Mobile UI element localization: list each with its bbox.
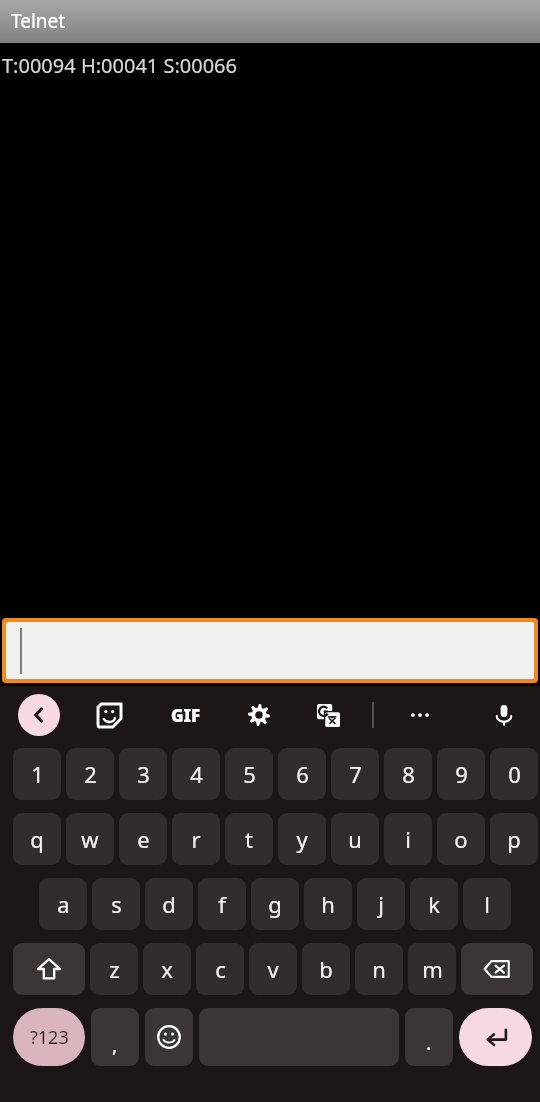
staticText: , [112,1031,118,1058]
button[interactable]: z [90,943,138,995]
staticText: p [507,824,521,854]
button[interactable]: e [119,813,167,865]
button[interactable]: Translate [308,695,348,735]
button[interactable]: Telnet [0,0,540,43]
staticText: g [268,889,282,919]
staticText: c [215,954,226,984]
button[interactable]: 6 [278,748,326,800]
staticText: j [378,889,384,919]
button[interactable]: Shift [13,943,85,995]
staticText: Telnet [11,8,66,34]
button[interactable]: More options [400,695,440,735]
button[interactable]: g [251,878,299,930]
button[interactable]: r [172,813,220,865]
staticText: o [454,824,468,854]
button[interactable]: Backspace [461,943,533,995]
button[interactable]: x [143,943,191,995]
staticText: v [267,954,279,984]
button[interactable]: 4 [172,748,220,800]
button[interactable]: h [304,878,352,930]
button[interactable]: n [355,943,403,995]
button[interactable]: Stickers [89,695,129,735]
staticText: d [162,889,176,919]
button[interactable]: m [408,943,456,995]
button[interactable]: k [410,878,458,930]
button[interactable]: q [13,813,61,865]
button[interactable]: l [463,878,511,930]
staticText: 5 [243,759,256,789]
staticText: w [81,824,99,854]
button[interactable]: d [145,878,193,930]
staticText: e [137,824,150,854]
button[interactable]: 8 [384,748,432,800]
button[interactable]: 3 [119,748,167,800]
staticText: x [161,954,173,984]
button[interactable]: 7 [331,748,379,800]
button[interactable]: 1 [13,748,61,800]
staticText: i [405,824,411,854]
button[interactable]: s [92,878,140,930]
button[interactable]: 2 [66,748,114,800]
button[interactable]: Emoji [145,1008,193,1066]
button[interactable]: t [225,813,273,865]
staticText: T:00094 H:00041 S:00066 [2,52,237,79]
staticText: s [111,889,122,919]
button[interactable]: v [249,943,297,995]
staticText: l [484,889,490,919]
button[interactable]: j [357,878,405,930]
button[interactable] [6,622,534,679]
staticText: 6 [296,759,309,789]
staticText: 1 [31,759,44,789]
staticText: a [57,889,70,919]
button[interactable]: a [39,878,87,930]
button[interactable]: Voice input [482,693,526,737]
staticText: q [30,824,44,854]
staticText: 9 [455,759,468,789]
button[interactable]: y [278,813,326,865]
staticText: y [296,824,308,854]
button[interactable]: 0 [490,748,538,800]
button[interactable]: i [384,813,432,865]
button[interactable]: Back [18,694,60,736]
button[interactable]: u [331,813,379,865]
button[interactable]: p [490,813,538,865]
staticText: 4 [190,759,203,789]
staticText: b [319,954,333,984]
staticText: 0 [508,759,521,789]
button[interactable]: c [196,943,244,995]
staticText: z [109,954,120,984]
button[interactable]: Enter [459,1008,532,1066]
button[interactable]: Settings [239,695,279,735]
staticText: k [428,889,440,919]
button[interactable]: . [405,1008,453,1066]
staticText: 7 [349,759,362,789]
button[interactable]: o [437,813,485,865]
staticText: u [348,824,362,854]
staticText: ?123 [30,1025,69,1050]
staticText: . [426,1029,432,1056]
button[interactable]: 5 [225,748,273,800]
button[interactable]: GIF [162,695,210,735]
staticText: 3 [137,759,150,789]
staticText: 2 [84,759,97,789]
staticText: r [191,824,201,854]
button[interactable]: b [302,943,350,995]
staticText: n [372,954,386,984]
staticText: h [321,889,335,919]
staticText: t [245,824,253,854]
button[interactable]: w [66,813,114,865]
staticText: GIF [171,704,201,727]
button[interactable]: , [91,1008,139,1066]
button[interactable]: f [198,878,246,930]
staticText: 8 [402,759,415,789]
button[interactable]: ?123 [13,1008,85,1066]
staticText: f [218,889,226,919]
button[interactable]: 9 [437,748,485,800]
staticText: m [422,954,443,984]
